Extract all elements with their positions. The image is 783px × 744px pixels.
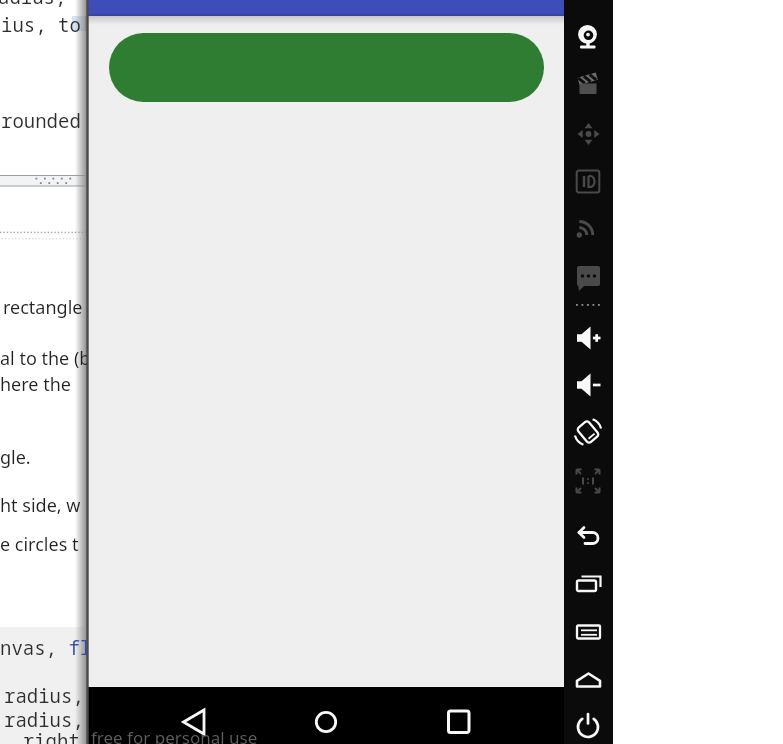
staticText: radius, [4, 683, 84, 709]
button[interactable] [566, 316, 611, 360]
button[interactable] [566, 111, 611, 155]
staticText: gle. [0, 445, 31, 470]
button[interactable] [172, 699, 216, 744]
staticText: radius, [4, 707, 84, 733]
button[interactable] [566, 658, 611, 702]
button[interactable] [566, 459, 611, 503]
staticText: al to the (b [0, 346, 91, 371]
staticText: ius, to [1, 12, 81, 38]
staticText: rectangle [3, 295, 83, 320]
button[interactable] [566, 62, 611, 106]
staticText: nvas, fl [0, 635, 92, 661]
staticText: e circles t [0, 532, 79, 557]
button[interactable] [566, 705, 611, 744]
button[interactable] [304, 699, 348, 744]
button[interactable] [566, 363, 611, 407]
staticText: ht side, w [0, 493, 81, 518]
staticText: . right [0, 728, 80, 744]
staticText: rounded [1, 108, 81, 134]
button[interactable] [436, 699, 480, 744]
button[interactable] [566, 206, 611, 250]
button[interactable] [566, 516, 611, 560]
staticText: adius, [0, 0, 67, 10]
button[interactable] [566, 159, 611, 203]
button[interactable] [566, 255, 611, 299]
button[interactable] [566, 12, 611, 56]
button[interactable] [566, 562, 611, 606]
staticText: free for personal use [91, 726, 258, 744]
button[interactable] [566, 410, 611, 454]
button[interactable] [566, 610, 611, 654]
button[interactable] [109, 33, 544, 102]
staticText: here the [0, 372, 71, 397]
